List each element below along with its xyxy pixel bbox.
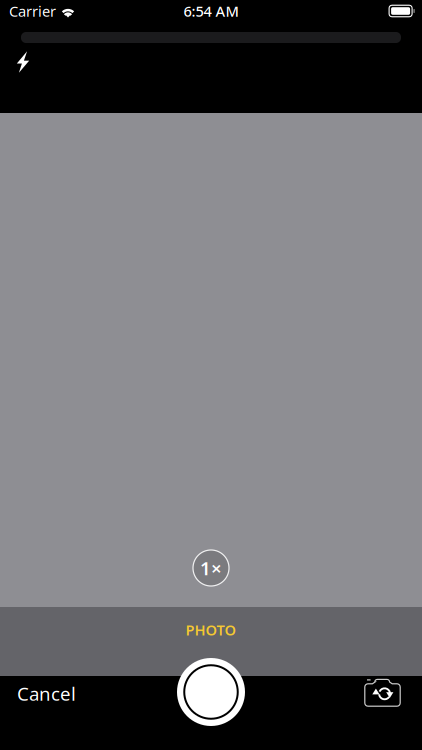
- button[interactable]: Switch Camera: [360, 677, 405, 710]
- button[interactable]: PHOTO: [171, 616, 250, 643]
- staticText: Cancel: [17, 681, 76, 706]
- staticText: PHOTO: [185, 620, 236, 639]
- staticText: 6:54 AM: [183, 1, 238, 21]
- staticText: Carrier: [9, 1, 56, 21]
- button[interactable]: Take Photo: [177, 658, 245, 726]
- button[interactable]: Flash: [3, 44, 43, 80]
- button[interactable]: Cancel: [15, 679, 78, 708]
- button[interactable]: Zoom 1x: [193, 550, 229, 586]
- staticText: 1×: [200, 556, 222, 580]
